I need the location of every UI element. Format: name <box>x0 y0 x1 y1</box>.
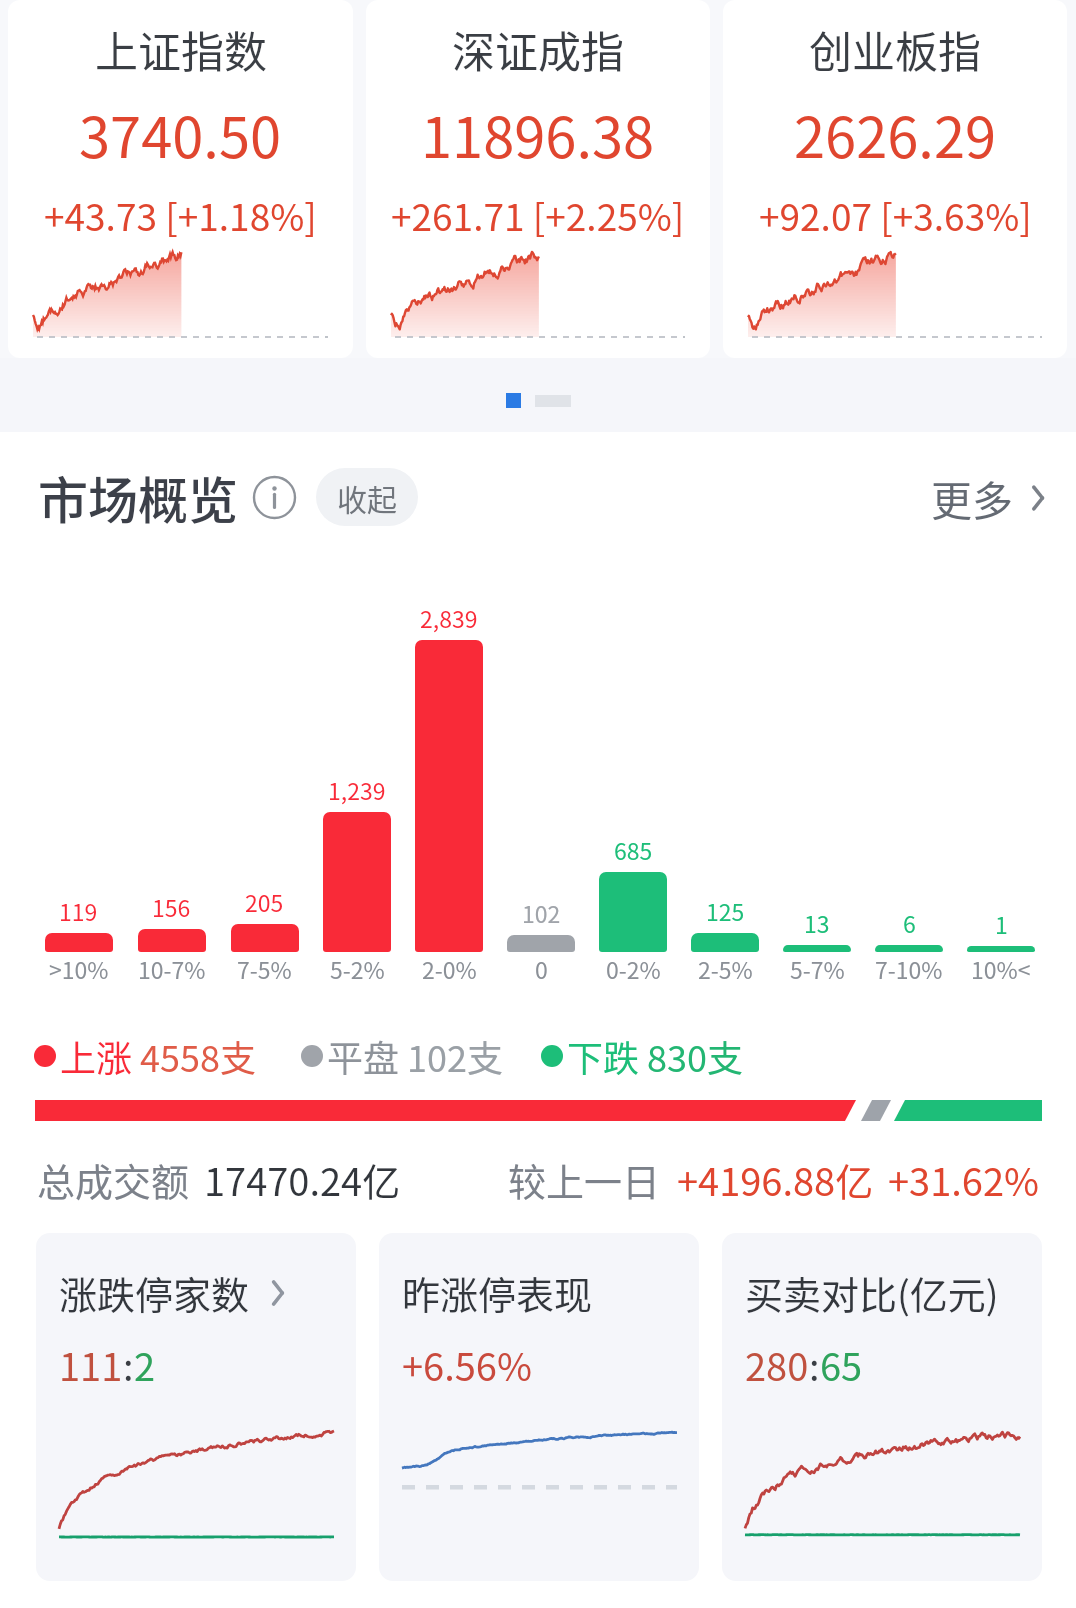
staticText: 下跌 <box>567 1030 640 1082</box>
staticText: 7-10% <box>875 952 943 985</box>
staticText: 685 <box>614 833 653 866</box>
button[interactable]: 6 <box>863 562 955 985</box>
staticText: 较上一日 <box>508 1152 661 1207</box>
staticText: 1 <box>995 907 1008 940</box>
staticText: 0-2% <box>606 952 661 985</box>
staticText: 10-7% <box>138 952 206 985</box>
staticText: 买卖对比(亿元) <box>745 1265 999 1320</box>
button[interactable]: 2,839 <box>403 562 495 985</box>
staticText: 1,239 <box>328 773 386 806</box>
button[interactable]: 更多 <box>931 468 1059 527</box>
staticText: 6 <box>903 906 916 939</box>
staticText: 205 <box>245 885 284 918</box>
staticText: 创业板指 <box>809 18 981 80</box>
other: Page 1 of 2 <box>506 393 571 408</box>
button[interactable]: 125 <box>679 562 771 985</box>
button[interactable]: 1 <box>955 562 1047 985</box>
staticText: 更多 <box>931 468 1013 527</box>
staticText: 平盘 <box>327 1030 400 1082</box>
staticText: 5-2% <box>330 952 385 985</box>
button[interactable]: 13 <box>771 562 863 985</box>
staticText: 10%< <box>971 952 1031 985</box>
staticText: 市场概览 <box>38 461 238 533</box>
staticText: 3740.50 <box>79 93 282 174</box>
staticText: 深证成指 <box>452 18 624 80</box>
staticText: 4558支 <box>140 1030 256 1082</box>
staticText: 0 <box>535 952 548 985</box>
button[interactable]: 205 <box>218 562 311 985</box>
staticText: 65 <box>820 1337 863 1392</box>
button[interactable]: Info <box>252 475 297 520</box>
staticText: : <box>809 1337 820 1392</box>
staticText: 125 <box>706 894 745 927</box>
staticText: 昨涨停表现 <box>402 1265 593 1320</box>
button[interactable]: 涨跌停家数 <box>36 1233 356 1581</box>
staticText: 13 <box>804 906 830 939</box>
staticText: 11896.38 <box>421 93 655 174</box>
staticText: 2626.29 <box>794 93 997 174</box>
staticText: 上证指数 <box>95 18 267 80</box>
staticText: 102支 <box>407 1030 503 1082</box>
button[interactable]: 上证指数 <box>8 0 353 358</box>
staticText: 上涨 <box>60 1030 133 1082</box>
staticText: 102 <box>522 896 561 929</box>
button[interactable]: 创业板指 <box>723 0 1067 358</box>
staticText: +31.62% <box>888 1152 1040 1207</box>
button[interactable]: 买卖对比(亿元) <box>722 1233 1042 1581</box>
staticText: 2-5% <box>698 952 753 985</box>
button[interactable]: 收起 <box>316 468 418 526</box>
staticText: 收起 <box>337 476 397 519</box>
staticText: 280 <box>745 1337 809 1392</box>
button[interactable]: 深证成指 <box>366 0 710 358</box>
staticText: 119 <box>59 894 98 927</box>
button[interactable]: 685 <box>587 562 679 985</box>
staticText: 2,839 <box>420 601 478 634</box>
staticText: +92.07 [+3.63%] <box>759 188 1032 242</box>
staticText: 5-7% <box>790 952 845 985</box>
staticText: 2 <box>134 1337 156 1392</box>
staticText: >10% <box>49 952 109 985</box>
staticText: 17470.24亿 <box>204 1152 401 1207</box>
button[interactable]: 1,239 <box>311 562 403 985</box>
staticText: 涨跌停家数 <box>59 1265 250 1320</box>
staticText: 2-0% <box>422 952 477 985</box>
staticText: : <box>123 1337 134 1392</box>
staticText: 111 <box>59 1337 123 1392</box>
button[interactable]: 102 <box>495 562 587 985</box>
staticText: +261.71 [+2.25%] <box>391 188 685 242</box>
staticText: +43.73 [+1.18%] <box>44 188 317 242</box>
staticText: 总成交额 <box>37 1152 190 1207</box>
staticText: 156 <box>152 890 191 923</box>
staticText: +6.56% <box>402 1337 532 1392</box>
button[interactable]: 156 <box>125 562 218 985</box>
staticText: 830支 <box>647 1030 743 1082</box>
staticText: +4196.88亿 <box>677 1152 874 1207</box>
button[interactable]: 119 <box>32 562 125 985</box>
staticText: 7-5% <box>237 952 292 985</box>
button[interactable]: 昨涨停表现 <box>379 1233 699 1581</box>
